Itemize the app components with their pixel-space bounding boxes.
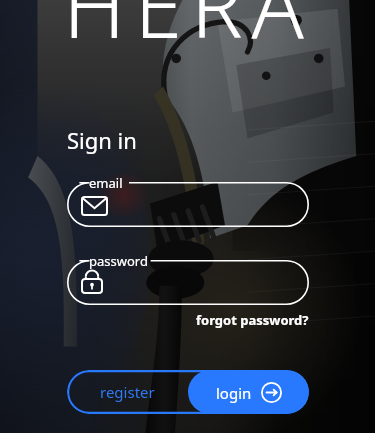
staticText: email (89, 174, 123, 192)
button[interactable]: register (67, 370, 188, 414)
button[interactable]: login (188, 370, 309, 414)
button[interactable]: forgot password? (196, 309, 309, 331)
staticText: register (100, 382, 155, 402)
staticText: login (216, 383, 252, 403)
staticText: HERA (63, 0, 313, 63)
staticText: Sign in (67, 125, 137, 155)
staticText: password (89, 252, 148, 270)
button[interactable]: email (67, 174, 309, 227)
button[interactable]: password (67, 252, 309, 305)
